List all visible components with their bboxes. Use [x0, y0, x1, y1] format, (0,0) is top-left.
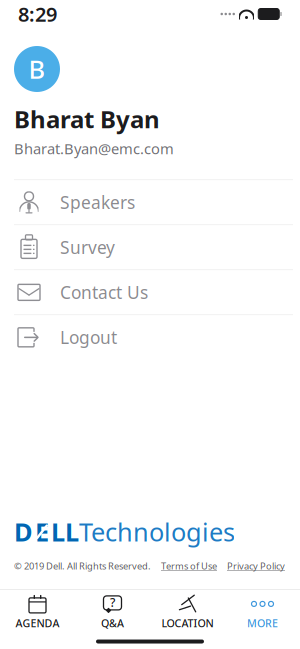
staticText: B	[28, 52, 45, 86]
button[interactable]: Survey	[0, 225, 300, 270]
staticText: Logout	[60, 326, 117, 349]
staticText: LL	[51, 515, 79, 549]
staticText: LOCATION	[161, 616, 213, 630]
button[interactable]: Logout	[0, 315, 300, 359]
staticText: Terms of Use	[161, 560, 217, 572]
staticText: Technologies	[79, 515, 235, 549]
staticText: Contact Us	[60, 281, 148, 304]
staticText: AGENDA	[15, 616, 59, 630]
staticText: MORE	[247, 616, 278, 630]
button[interactable]: ?	[75, 590, 150, 634]
staticText: 8:29	[18, 1, 57, 27]
staticText: E	[35, 515, 49, 549]
button[interactable]: Terms of Use	[151, 560, 217, 572]
staticText: © 2019 Dell. All Rights Reserved.	[14, 560, 151, 572]
staticText: Q&A	[101, 616, 124, 630]
button[interactable]: Contact Us	[0, 270, 300, 315]
staticText: Speakers	[60, 191, 135, 214]
button[interactable]: Speakers	[0, 180, 300, 225]
button[interactable]: LOCATION	[150, 590, 225, 634]
button[interactable]: AGENDA	[0, 590, 75, 634]
staticText: Bharat.Byan@emc.com	[14, 139, 174, 158]
staticText: Bharat Byan	[14, 103, 160, 135]
staticText: D	[14, 515, 33, 549]
staticText: Privacy Policy	[227, 560, 285, 572]
button[interactable]: MORE	[225, 590, 300, 634]
staticText: Survey	[60, 236, 115, 259]
staticText: ?	[110, 594, 115, 610]
button[interactable]: Privacy Policy	[217, 560, 285, 572]
